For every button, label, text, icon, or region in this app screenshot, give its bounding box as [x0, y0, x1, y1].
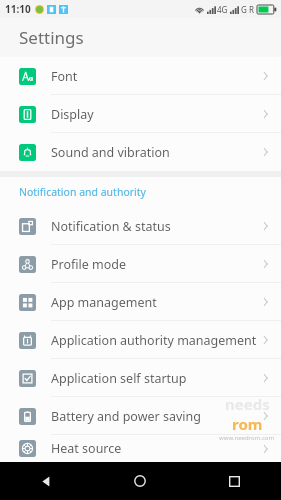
- staticText: 11:10: [5, 2, 31, 16]
- staticText: 4G: [217, 4, 228, 15]
- button[interactable]: Application self startup: [0, 359, 281, 397]
- button[interactable]: App management: [0, 283, 281, 321]
- button[interactable]: Application authority management: [0, 321, 281, 359]
- button[interactable]: Back: [0, 462, 93, 500]
- button[interactable]: Notification & status: [0, 207, 281, 245]
- staticText: www.needrom.com: [219, 434, 275, 442]
- staticText: G: [241, 4, 247, 15]
- staticText: Notification & status: [51, 218, 171, 235]
- staticText: Display: [51, 106, 94, 123]
- staticText: Application self startup: [51, 370, 187, 387]
- button[interactable]: Heat source: [0, 435, 281, 462]
- staticText: Heat source: [51, 440, 122, 457]
- staticText: R: [249, 4, 254, 15]
- button[interactable]: Recent apps: [187, 462, 281, 500]
- staticText: Font: [51, 68, 78, 85]
- staticText: Battery and power saving: [51, 408, 201, 425]
- staticText: Settings: [19, 26, 84, 49]
- staticText: Application authority management: [51, 332, 257, 349]
- staticText: Sound and vibration: [51, 144, 170, 161]
- button[interactable]: Sound and vibration: [0, 133, 281, 171]
- staticText: Notification and authority: [19, 185, 146, 199]
- button[interactable]: Profile mode: [0, 245, 281, 283]
- button[interactable]: Font: [0, 57, 281, 95]
- button[interactable]: Display: [0, 95, 281, 133]
- button[interactable]: Battery and power saving: [0, 397, 281, 435]
- staticText: Profile mode: [51, 256, 127, 273]
- staticText: rom: [232, 414, 263, 434]
- staticText: needs: [225, 394, 270, 414]
- button[interactable]: Home: [93, 462, 187, 500]
- staticText: App management: [51, 294, 157, 311]
